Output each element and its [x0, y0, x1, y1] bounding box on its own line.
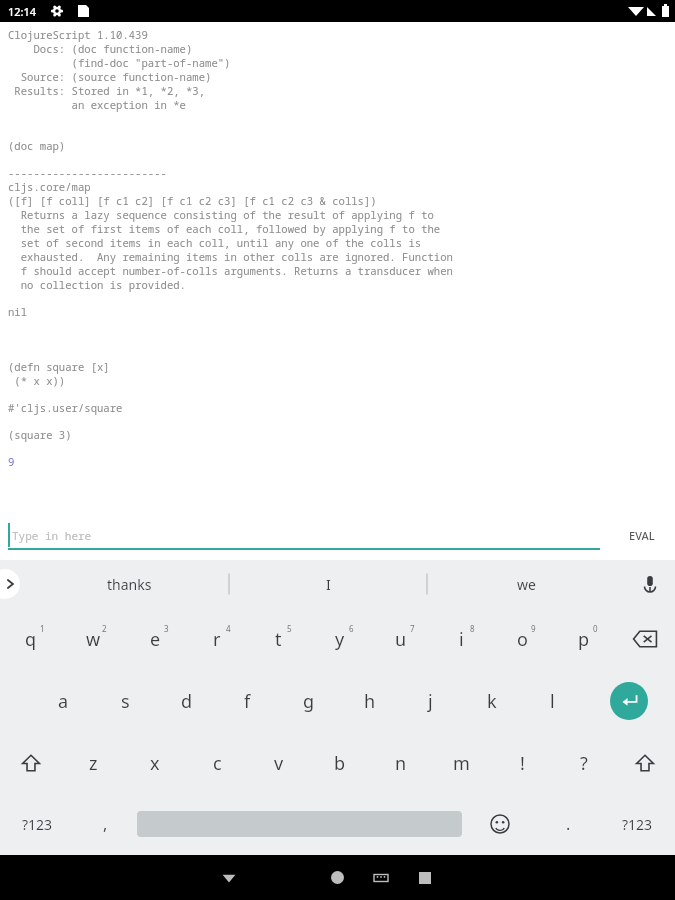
staticText: the set of first items of each coll, fol… — [8, 222, 441, 236]
button[interactable]: EVAL — [621, 522, 663, 549]
staticText: no collection is provided. — [8, 278, 186, 292]
staticText: Returns a lazy sequence consisting of th… — [8, 208, 434, 222]
staticText: EVAL — [629, 528, 655, 543]
staticText: 3 — [164, 623, 169, 634]
staticText: o — [517, 627, 528, 652]
staticText: ([f] [f coll] [f c1 c2] [f c1 c2 c3] [f … — [8, 194, 377, 208]
button[interactable]: c — [186, 732, 248, 794]
staticText: u — [395, 627, 407, 652]
button[interactable]: k — [461, 670, 522, 732]
button[interactable]: ! — [492, 732, 553, 794]
staticText: Type in here — [12, 528, 92, 543]
staticText: (square 3) — [8, 428, 72, 442]
staticText: 5 — [287, 623, 292, 634]
button[interactable]: h — [339, 670, 400, 732]
staticText: 12:14 — [8, 4, 37, 19]
staticText: z — [89, 751, 98, 776]
staticText: 9 — [8, 455, 15, 469]
staticText: 0 — [593, 623, 598, 634]
staticText: (* x x)) — [8, 374, 66, 388]
staticText: q — [25, 627, 37, 652]
button[interactable]: Shift — [614, 732, 675, 794]
button[interactable]: e — [124, 608, 186, 670]
staticText: e — [150, 627, 161, 652]
staticText: ?123 — [622, 815, 653, 834]
button[interactable]: o — [492, 608, 553, 670]
button[interactable]: z — [62, 732, 124, 794]
button[interactable]: ?123 — [600, 794, 675, 854]
button[interactable]: g — [278, 670, 339, 732]
staticText: l — [550, 689, 555, 714]
button[interactable]: Emoji — [462, 794, 537, 854]
button[interactable]: ?123 — [0, 794, 74, 854]
button[interactable]: b — [309, 732, 370, 794]
staticText: 6 — [349, 623, 354, 634]
button[interactable]: m — [431, 732, 492, 794]
button[interactable]: Hide keyboard — [205, 855, 253, 900]
button[interactable]: n — [370, 732, 431, 794]
staticText: x — [150, 751, 160, 776]
staticText: ------------------------- — [8, 166, 167, 180]
staticText: r — [213, 627, 221, 652]
button[interactable]: thanks — [30, 560, 229, 608]
staticText: thanks — [107, 575, 152, 594]
staticText: nil — [8, 305, 28, 319]
staticText: v — [274, 751, 284, 776]
staticText: i — [459, 627, 464, 652]
staticText: y — [335, 627, 345, 652]
staticText: 1 — [40, 623, 45, 634]
button[interactable]: ? — [553, 732, 614, 794]
staticText: (find-doc "part-of-name") — [8, 56, 231, 70]
button[interactable]: r — [186, 608, 248, 670]
button[interactable]: . — [537, 794, 600, 854]
staticText: 7 — [410, 623, 415, 634]
button[interactable]: u — [370, 608, 431, 670]
staticText: ?123 — [22, 815, 53, 834]
staticText: d — [181, 689, 193, 714]
staticText: Results: Stored in *1, *2, *3, — [8, 84, 206, 98]
button[interactable]: Enter — [583, 670, 675, 732]
button[interactable]: y — [309, 608, 370, 670]
staticText: p — [578, 627, 590, 652]
button[interactable]: t — [248, 608, 309, 670]
button[interactable]: we — [427, 560, 625, 608]
button[interactable]: v — [248, 732, 309, 794]
button[interactable]: , — [74, 794, 137, 854]
staticText: m — [453, 751, 470, 776]
button[interactable]: f — [217, 670, 278, 732]
staticText: (defn square [x] — [8, 360, 110, 374]
button[interactable]: i — [431, 608, 492, 670]
staticText: n — [395, 751, 407, 776]
staticText: Docs: (doc function-name) — [8, 42, 193, 56]
staticText: c — [213, 751, 222, 776]
button[interactable]: I — [229, 560, 427, 608]
staticText: 9 — [531, 623, 536, 634]
staticText: h — [364, 689, 376, 714]
staticText: t — [275, 627, 282, 652]
button[interactable]: Shift — [0, 732, 62, 794]
staticText: set of second items in each coll, until … — [8, 236, 422, 250]
staticText: , — [103, 813, 108, 835]
button[interactable]: Expand toolbar — [0, 569, 20, 599]
button[interactable]: d — [156, 670, 217, 732]
staticText: 8 — [470, 623, 475, 634]
staticText: 2 — [102, 623, 107, 634]
button[interactable]: p — [553, 608, 614, 670]
button[interactable]: s — [94, 670, 156, 732]
staticText: ? — [580, 751, 588, 776]
button[interactable]: Switch keyboard — [361, 858, 401, 898]
staticText: exhausted. Any remaining items in other … — [8, 250, 453, 264]
button[interactable]: a — [32, 670, 94, 732]
button[interactable]: j — [400, 670, 461, 732]
button[interactable]: q — [0, 608, 62, 670]
button[interactable]: Home — [313, 855, 361, 900]
button[interactable]: Backspace — [614, 608, 675, 670]
button[interactable]: w — [62, 608, 124, 670]
button[interactable]: Recent apps — [401, 855, 449, 900]
button[interactable]: x — [124, 732, 186, 794]
button[interactable]: Voice input — [625, 560, 675, 608]
button[interactable]: Type in here — [8, 520, 600, 550]
staticText: . — [566, 813, 571, 835]
button[interactable]: l — [522, 670, 583, 732]
